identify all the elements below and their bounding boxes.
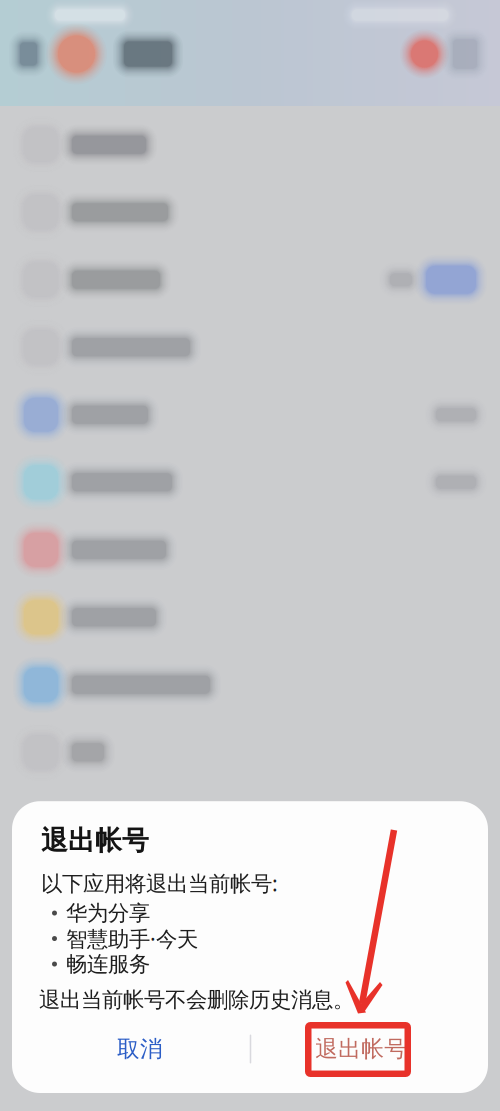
staticText: 退出帐号 <box>315 1035 407 1063</box>
button[interactable]: Settings item <box>0 718 500 786</box>
button[interactable]: Settings item <box>0 178 500 246</box>
staticText: 退出帐号 <box>41 824 149 857</box>
staticText: 华为分享 <box>66 900 150 926</box>
staticText: 智慧助手·今天 <box>66 924 198 953</box>
button[interactable]: Settings item <box>0 381 500 448</box>
staticText: 畅连服务 <box>66 951 150 977</box>
button[interactable]: Settings item <box>0 651 500 718</box>
staticText: 退出当前帐号不会删除历史消息。 <box>39 987 354 1013</box>
staticText: 以下应用将退出当前帐号: <box>41 869 278 897</box>
button[interactable]: 退出帐号 <box>251 1024 471 1074</box>
button[interactable]: Settings item <box>0 448 500 516</box>
button[interactable]: Settings item <box>0 516 500 583</box>
button[interactable]: Settings item <box>0 313 500 381</box>
button[interactable]: 取消 <box>30 1024 250 1074</box>
button[interactable]: Settings item <box>0 111 500 178</box>
staticText: 取消 <box>117 1035 163 1063</box>
button[interactable]: Settings item <box>0 583 500 651</box>
button[interactable]: Settings item <box>0 246 500 313</box>
